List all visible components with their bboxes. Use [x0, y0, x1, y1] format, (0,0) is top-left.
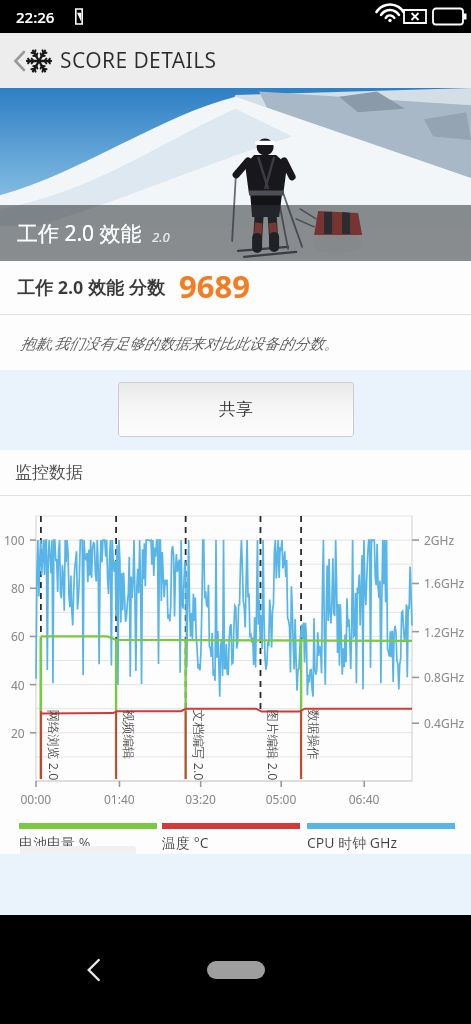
staticText: 监控数据: [15, 462, 83, 483]
staticText: 2.0: [152, 228, 170, 246]
staticText: SCORE DETAILS: [60, 46, 217, 75]
button[interactable]: Back: [70, 948, 114, 992]
staticText: 工作 2.0 效能: [17, 219, 142, 248]
button[interactable]: Home: [207, 961, 265, 979]
staticText: 共享: [219, 399, 253, 420]
other: Back: [10, 48, 26, 74]
button[interactable]: 共享: [118, 382, 354, 437]
staticText: 9689: [179, 265, 250, 307]
staticText: 22:26: [16, 7, 55, 27]
button[interactable]: Back: [0, 33, 471, 88]
staticText: 工作 2.0 效能 分数: [17, 275, 165, 300]
staticText: 抱歉,我们没有足够的数据来对比此设备的分数。: [20, 333, 339, 353]
